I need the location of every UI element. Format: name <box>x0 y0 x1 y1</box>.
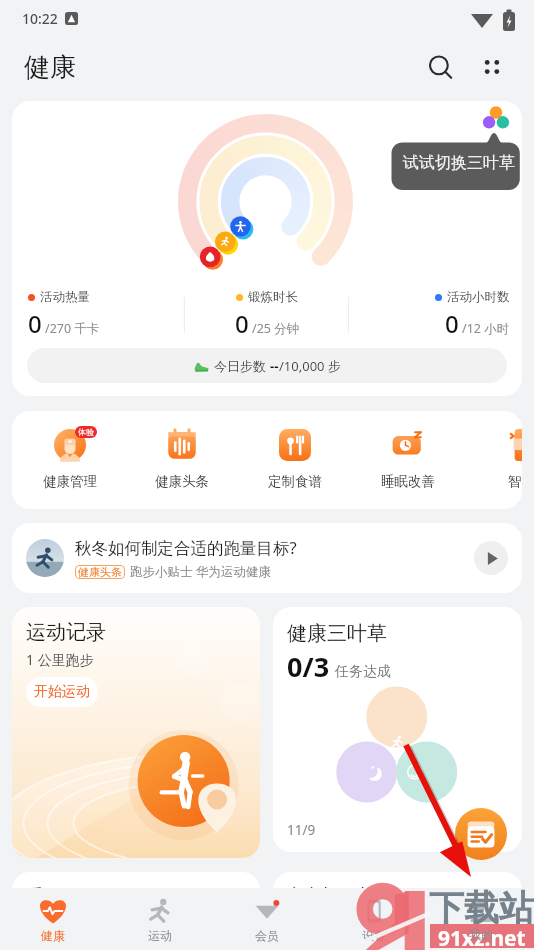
button[interactable]: 健康 <box>0 888 106 950</box>
button[interactable]: 秋冬如何制定合适的跑量目标? <box>12 523 522 593</box>
staticText: /12 小时 <box>462 320 510 337</box>
staticText: 智能 <box>508 473 522 490</box>
staticText: 心率与压力 <box>287 885 372 906</box>
staticText: 任务达成 <box>335 663 391 681</box>
staticText: 设备 <box>362 928 386 943</box>
button[interactable]: 开始运动 <box>26 677 98 707</box>
button[interactable]: 更多 <box>470 45 514 89</box>
staticText: 0 <box>235 307 249 340</box>
staticText: 活动小时数 <box>447 289 510 305</box>
staticText: 0/3 <box>287 648 330 685</box>
staticText: 跑步小贴士 华为运动健康 <box>130 563 271 580</box>
staticText: 91xz.net <box>438 924 526 948</box>
staticText: 定制食谱 <box>268 473 322 490</box>
button[interactable]: 搜索 <box>418 45 462 89</box>
staticText: 秋冬如何制定合适的跑量目标? <box>75 536 297 559</box>
button[interactable]: 定制食谱 <box>251 420 339 500</box>
staticText: 运动记录 <box>26 620 106 645</box>
staticText: 健康头条 <box>155 473 209 490</box>
button[interactable]: 今日步数 <box>27 348 507 383</box>
staticText: 下载站 <box>429 886 534 930</box>
button[interactable]: 健康头条 <box>138 420 226 500</box>
staticText: /25 分钟 <box>252 320 300 337</box>
staticText: 我的 <box>469 928 493 943</box>
staticText: /270 千卡 <box>45 320 100 337</box>
staticText: 会员 <box>255 928 279 943</box>
button[interactable]: 我的 <box>427 888 534 950</box>
staticText: 健康管理 <box>43 473 97 490</box>
button[interactable]: 设备 <box>320 888 427 950</box>
staticText: 睡眠 <box>26 885 60 906</box>
staticText: 今日步数 <box>214 357 270 375</box>
button[interactable]: 会员 <box>213 888 320 950</box>
staticText: 睡眠改善 <box>381 473 435 490</box>
staticText: 0 <box>28 307 42 340</box>
staticText: 10:22 <box>22 9 58 28</box>
staticText: 我的 <box>469 927 493 942</box>
button[interactable]: 运动 <box>106 888 213 950</box>
staticText: 试试切换三叶草 <box>403 153 515 173</box>
button[interactable]: 睡眠 <box>12 872 260 912</box>
button[interactable]: 心率与压力 <box>273 872 522 912</box>
button[interactable]: 智能 <box>477 420 522 500</box>
staticText: -- <box>270 357 279 375</box>
button[interactable]: 任务 <box>455 808 507 860</box>
staticText: /10,000 步 <box>279 357 341 375</box>
staticText: 活动热量 <box>40 289 90 305</box>
staticText: 健康 <box>24 51 76 84</box>
staticText: 1 公里跑步 <box>26 650 94 669</box>
staticText: 运动 <box>148 928 172 943</box>
button[interactable]: 体验 <box>26 420 114 500</box>
button[interactable]: 睡眠改善 <box>364 420 452 500</box>
staticText: 健康三叶草 <box>287 621 387 646</box>
staticText: 锻炼时长 <box>248 289 298 305</box>
button[interactable]: 三叶草 <box>467 101 522 133</box>
button[interactable]: 活动热量 <box>12 101 522 396</box>
staticText: 开始运动 <box>34 683 90 701</box>
staticText: 体验 <box>78 427 94 437</box>
staticText: 11/9 <box>287 821 316 839</box>
staticText: 健康头条 <box>78 565 122 579</box>
button[interactable]: 健康三叶草 <box>273 607 522 852</box>
staticText: 0 <box>445 307 459 340</box>
button[interactable]: 运动记录 <box>12 607 260 858</box>
staticText: 健康 <box>41 928 65 943</box>
button[interactable]: 播放 <box>474 541 508 575</box>
